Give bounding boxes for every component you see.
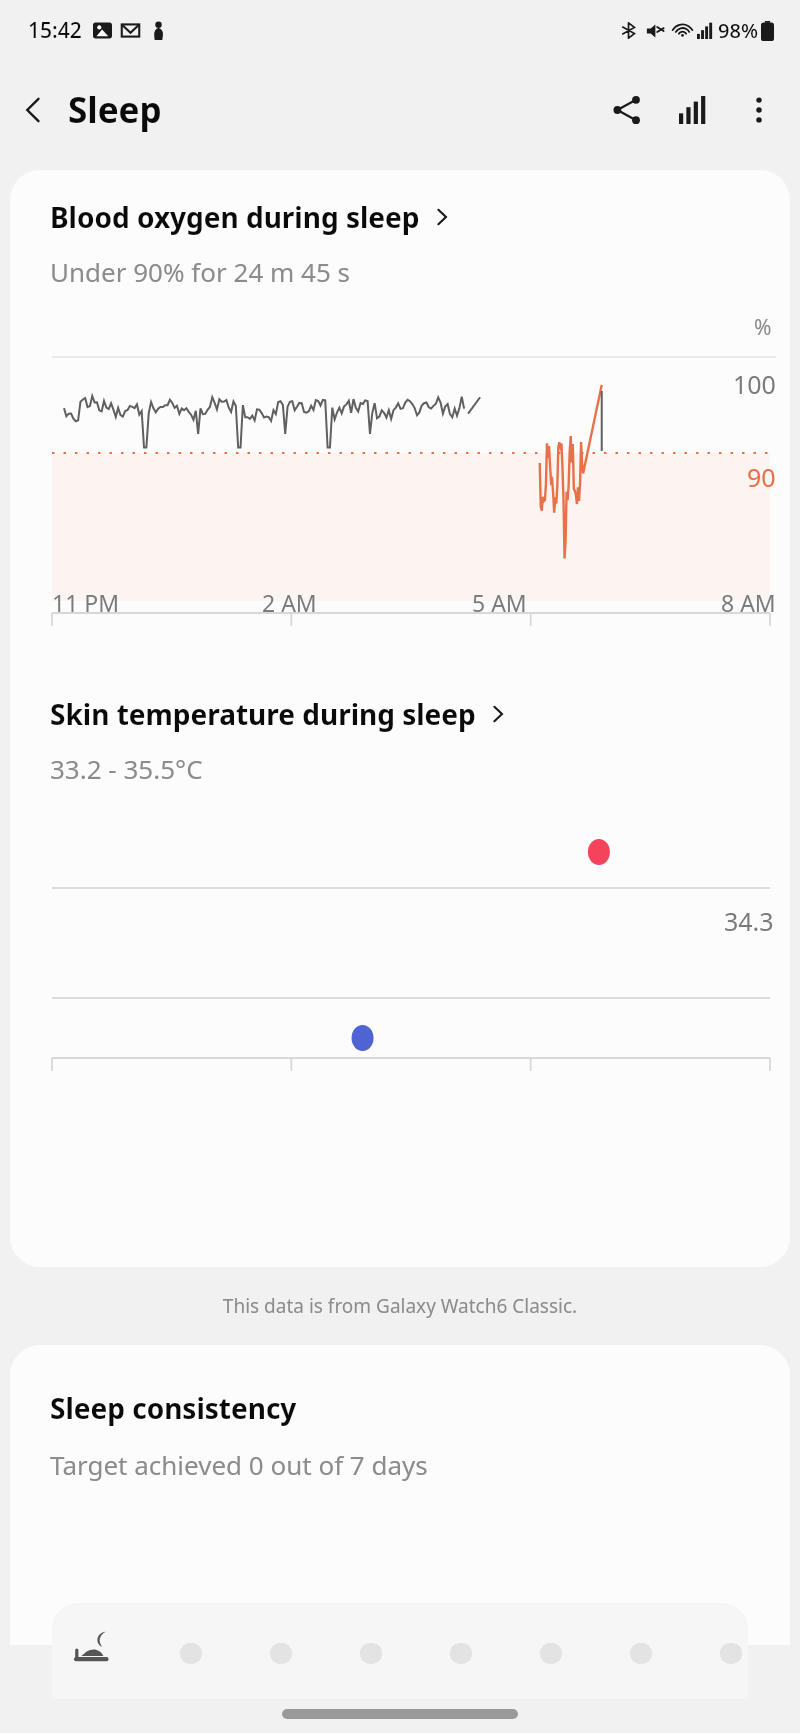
button[interactable]: Day 4	[448, 1630, 474, 1664]
button[interactable]: Day 6	[628, 1630, 654, 1664]
staticText: 8 AM	[721, 587, 776, 618]
button[interactable]: Sleep consistency	[10, 1345, 790, 1645]
staticText: 33.2 - 35.5°C	[50, 751, 203, 786]
staticText: Target achieved 0 out of 7 days	[50, 1447, 428, 1482]
button[interactable]: Day 1	[178, 1630, 204, 1664]
staticText: This data is from Galaxy Watch6 Classic.	[24, 1293, 776, 1319]
button[interactable]: Day 7	[718, 1630, 744, 1664]
button[interactable]: Skin temperature during sleep	[10, 695, 790, 786]
staticText: 2 AM	[262, 587, 317, 618]
button[interactable]: Day 2	[268, 1630, 294, 1664]
button[interactable]: Day 3	[358, 1630, 384, 1664]
staticText: 90	[747, 460, 776, 494]
staticText: %	[754, 313, 772, 342]
staticText: Sleep	[68, 86, 162, 134]
staticText: 98%	[718, 17, 758, 44]
staticText: 100	[733, 367, 776, 401]
staticText: Blood oxygen during sleep	[50, 198, 420, 236]
button[interactable]: More options	[726, 77, 792, 143]
staticText: Skin temperature during sleep	[50, 695, 476, 733]
staticText: 15:42	[28, 16, 82, 45]
staticText: 11 PM	[52, 587, 120, 618]
staticText: 5 AM	[472, 587, 527, 618]
button[interactable]: Back	[0, 76, 68, 144]
button[interactable]: Day 5	[538, 1630, 564, 1664]
staticText: 34.3	[724, 904, 774, 938]
button[interactable]: Share	[594, 77, 660, 143]
staticText: Sleep consistency	[50, 1389, 297, 1427]
staticText: Under 90% for 24 m 45 s	[50, 254, 351, 289]
button[interactable]: Sleep	[70, 1625, 114, 1669]
button[interactable]: Blood oxygen during sleep	[10, 170, 790, 289]
button[interactable]: Trends	[660, 77, 726, 143]
